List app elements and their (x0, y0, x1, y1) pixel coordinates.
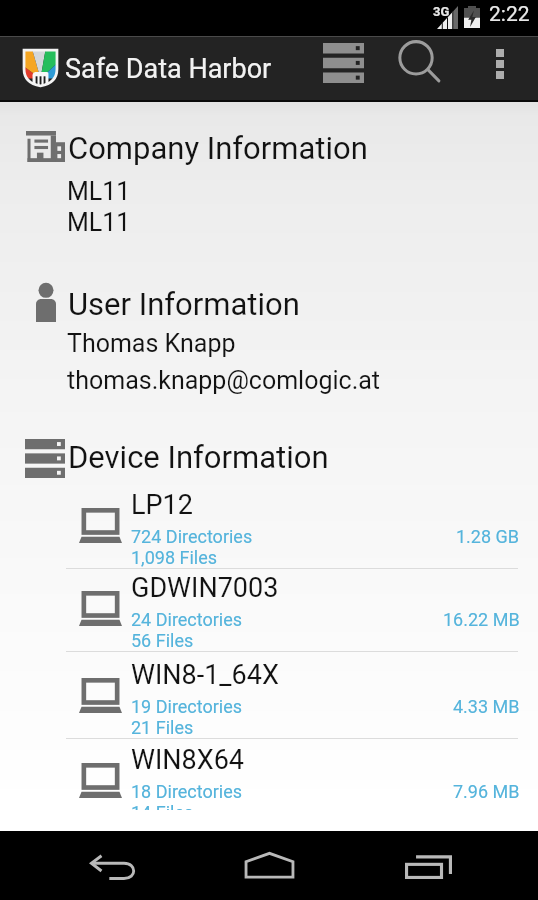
staticText: 2:22 (489, 2, 530, 27)
button[interactable]: WIN8-1_64X (0, 653, 538, 739)
staticText: 16.22 MB (443, 609, 520, 630)
staticText: Company Information (68, 130, 368, 166)
staticText: 14 Files (131, 802, 194, 810)
button[interactable]: Recent apps (358, 831, 493, 900)
staticText: Safe Data Harbor (65, 53, 272, 85)
staticText: 4.33 MB (453, 696, 520, 717)
staticText: 724 Directories (131, 526, 253, 547)
button[interactable]: Back (45, 831, 180, 900)
staticText: ML11 (67, 208, 131, 237)
staticText: 21 Files (131, 717, 194, 738)
button[interactable]: WIN8X64 (0, 738, 538, 810)
staticText: 19 Directories (131, 696, 243, 717)
button[interactable]: LP12 (0, 483, 538, 569)
button[interactable]: More options (476, 36, 538, 102)
staticText: Thomas Knapp (67, 329, 236, 358)
button[interactable]: Devices (302, 36, 384, 102)
staticText: User Information (68, 286, 300, 322)
staticText: 1.28 GB (456, 526, 520, 547)
staticText: 1,098 Files (131, 547, 218, 568)
staticText: ML11 (67, 177, 131, 206)
button[interactable]: Search (384, 36, 468, 102)
staticText: 3G (433, 4, 450, 19)
staticText: 56 Files (131, 630, 194, 651)
staticText: WIN8X64 (131, 744, 245, 776)
button[interactable]: GDWIN7003 (0, 566, 538, 652)
staticText: 18 Directories (131, 781, 243, 802)
staticText: LP12 (131, 489, 193, 521)
staticText: Device Information (68, 439, 329, 475)
staticText: 7.96 MB (453, 781, 520, 802)
staticText: 24 Directories (131, 609, 243, 630)
staticText: WIN8-1_64X (131, 659, 279, 691)
button[interactable]: Home (201, 831, 336, 900)
staticText: GDWIN7003 (131, 572, 279, 604)
staticText: thomas.knapp@comlogic.at (67, 366, 381, 395)
